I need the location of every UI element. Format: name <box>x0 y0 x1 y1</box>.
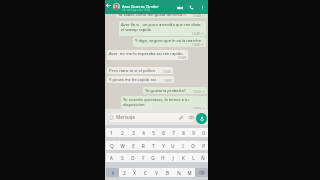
button[interactable]: O <box>188 141 198 150</box>
staticText: Yo cuando quierasss, la tienes a tu <box>123 97 189 103</box>
staticText: O <box>191 143 195 149</box>
button[interactable]: N <box>173 168 184 177</box>
button[interactable]: A <box>106 153 117 162</box>
staticText: Q <box>110 143 114 149</box>
button[interactable]: 6 <box>158 128 168 137</box>
staticText: Ya sabes como me gusta de cerca !! <box>118 12 186 18</box>
staticText: el wasap rapido <box>121 27 152 33</box>
button[interactable]: L <box>188 153 198 162</box>
button[interactable]: V <box>151 168 162 177</box>
staticText: 13:48 <box>193 14 201 18</box>
button[interactable]: Q <box>106 141 117 150</box>
staticText: 0 <box>202 130 205 136</box>
button[interactable]: W <box>117 141 128 150</box>
button[interactable]: 1 <box>106 128 117 137</box>
button[interactable]: Z <box>119 168 129 177</box>
button[interactable]: G <box>148 153 158 162</box>
button[interactable]: Aver lie si , un poco atrevida que me di… <box>119 21 206 36</box>
button[interactable]: Aver no me lo esperaba asi tan rapido <box>107 50 188 60</box>
staticText: Te gustaria probarla? <box>145 88 186 94</box>
staticText: F <box>142 155 145 161</box>
button[interactable]: 9 <box>188 128 198 137</box>
button[interactable]: Y <box>158 141 168 150</box>
staticText: S <box>121 155 124 161</box>
button[interactable]: Yo cuando quierasss, la tienes a tu <box>121 96 207 111</box>
button[interactable]: Mensaje <box>108 113 195 122</box>
staticText: 8 <box>182 130 185 136</box>
button[interactable]: 0 <box>198 128 208 137</box>
staticText: E <box>132 143 135 149</box>
staticText: J <box>172 155 174 161</box>
staticText: 5 <box>152 130 155 136</box>
button[interactable]: P <box>198 141 208 150</box>
staticText: P <box>202 143 205 149</box>
button[interactable]: 5 <box>148 128 158 137</box>
button[interactable]: Ya sabes como me gusta de cerca !! <box>116 11 207 18</box>
button[interactable]: B <box>162 168 173 177</box>
button[interactable]: 3 <box>128 128 138 137</box>
staticText: Z <box>123 170 126 176</box>
staticText: B <box>166 170 169 176</box>
staticText: 6 <box>162 130 165 136</box>
staticText: Ñ <box>201 155 205 161</box>
button[interactable]: Te gustaria probarla? <box>143 87 207 94</box>
staticText: M <box>187 170 192 176</box>
button[interactable]: E <box>128 141 138 150</box>
staticText: Y <box>162 143 165 149</box>
button[interactable]: Y digo, seguro que le va la marcha <box>133 37 206 47</box>
button[interactable]: C <box>140 168 151 177</box>
staticText: V <box>155 170 158 176</box>
button[interactable]: D <box>128 153 138 162</box>
button[interactable]: Profile photo <box>113 3 120 10</box>
button[interactable]: 8 <box>178 128 188 137</box>
staticText: 1 <box>110 130 113 136</box>
button[interactable]: 2 <box>117 128 128 137</box>
button[interactable]: 7 <box>168 128 178 137</box>
button[interactable]: J <box>168 153 178 162</box>
staticText: últ. vez hoy a las 13:50 <box>122 8 151 12</box>
staticText: R <box>142 143 145 149</box>
button[interactable]: M <box>184 168 195 177</box>
staticText: 2 <box>121 130 124 136</box>
staticText: W <box>120 143 125 149</box>
staticText: A <box>110 155 113 161</box>
staticText: G <box>151 155 155 161</box>
button[interactable]: Backspace <box>195 168 208 177</box>
button[interactable]: U <box>168 141 178 150</box>
staticText: 13:49 <box>192 43 200 47</box>
button[interactable]: R <box>138 141 148 150</box>
button[interactable]: Back <box>105 2 112 9</box>
button[interactable]: K <box>178 153 188 162</box>
staticText: Mensaje <box>116 114 135 121</box>
staticText: X <box>133 170 136 176</box>
button[interactable]: S <box>117 153 128 162</box>
button[interactable]: Call <box>187 3 196 12</box>
staticText: U <box>171 143 175 149</box>
button[interactable]: Video call <box>175 3 184 12</box>
staticText: disposicion <box>123 102 145 108</box>
button[interactable]: X <box>129 168 140 177</box>
staticText: 4 <box>142 130 145 136</box>
button[interactable]: H <box>158 153 168 162</box>
staticText: Pero claro te vi el pollon <box>109 68 155 74</box>
button[interactable]: More options <box>198 3 206 11</box>
button[interactable]: F <box>138 153 148 162</box>
staticText: Y pocas me he cojido asi <box>109 77 156 83</box>
staticText: Y digo, seguro que le va la marcha <box>135 38 201 44</box>
button[interactable]: Pero claro te vi el pollon <box>107 67 173 74</box>
staticText: D <box>131 155 135 161</box>
staticText: L <box>192 155 195 161</box>
button[interactable]: I <box>178 141 188 150</box>
button[interactable]: Shift <box>106 168 119 177</box>
button[interactable]: Y pocas me he cojido asi <box>107 76 174 83</box>
button[interactable]: 4 <box>138 128 148 137</box>
staticText: 13:49 <box>163 70 171 74</box>
button[interactable]: Ñ <box>198 153 208 162</box>
staticText: H <box>161 155 165 161</box>
staticText: Aver lie si , un poco atrevida que me di… <box>121 22 201 28</box>
staticText: I <box>182 143 184 149</box>
staticText: C <box>144 170 147 176</box>
button[interactable]: Record voice message <box>196 113 207 124</box>
staticText: 13:49 <box>192 32 200 36</box>
button[interactable]: T <box>148 141 158 150</box>
